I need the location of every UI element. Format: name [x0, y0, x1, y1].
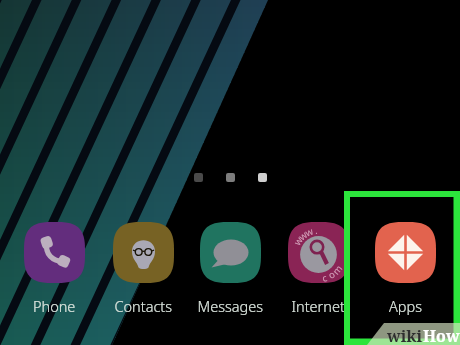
- button[interactable]: Internet: [288, 221, 349, 311]
- button[interactable]: Messages: [200, 221, 261, 311]
- button[interactable]: Contacts: [113, 221, 174, 311]
- button[interactable]: Phone: [24, 221, 85, 311]
- button[interactable]: Apps: [375, 221, 436, 311]
